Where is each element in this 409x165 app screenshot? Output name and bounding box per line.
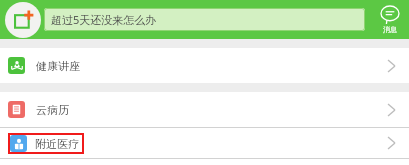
button[interactable]: 消息 xyxy=(371,0,409,39)
button[interactable]: 云病历 xyxy=(0,92,409,127)
button[interactable]: 新建 xyxy=(5,2,41,38)
staticText: 云病历 xyxy=(36,103,69,117)
staticText: 附近医疗 xyxy=(35,137,79,151)
staticText: 超过5天还没来怎么办 xyxy=(51,12,157,27)
staticText: 健康讲座 xyxy=(36,59,80,73)
button[interactable]: 附近医疗 xyxy=(0,128,409,158)
button[interactable]: 超过5天还没来怎么办 xyxy=(44,8,365,31)
staticText: 消息 xyxy=(383,25,397,34)
button[interactable]: 健康讲座 xyxy=(0,48,409,83)
